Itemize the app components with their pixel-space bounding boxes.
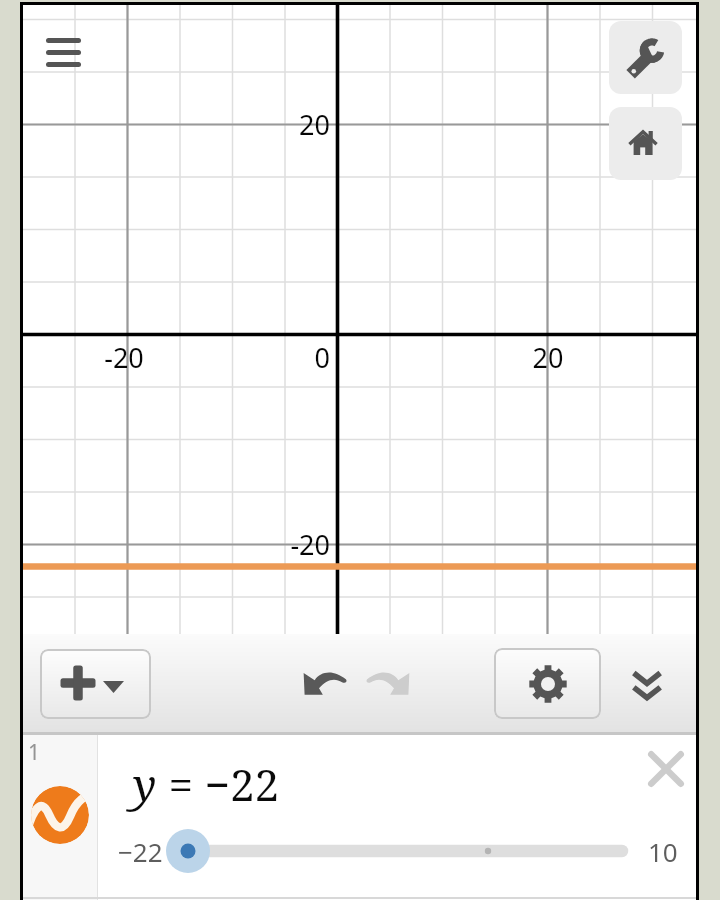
staticText: -20	[278, 526, 330, 563]
staticText: 20	[522, 339, 574, 376]
button[interactable]: Home	[609, 107, 682, 180]
staticText: 0	[278, 339, 330, 376]
button[interactable]: Menu	[39, 27, 95, 79]
staticText: 20	[278, 106, 330, 143]
staticText: 1	[28, 738, 41, 767]
button[interactable]: Undo	[287, 656, 363, 708]
staticText: -20	[98, 339, 150, 376]
button[interactable]: Add expression	[40, 649, 151, 719]
staticText: −22	[118, 834, 163, 869]
staticText: = −22	[157, 754, 280, 814]
staticText: 10	[648, 834, 678, 869]
button[interactable]: Collapse expression list	[619, 658, 675, 710]
button[interactable]: Settings	[494, 648, 601, 719]
button[interactable]: Graph settings	[609, 21, 682, 94]
button[interactable]: Redo	[350, 656, 426, 708]
staticText: y	[133, 754, 157, 814]
button[interactable]: Delete expression	[636, 739, 696, 799]
